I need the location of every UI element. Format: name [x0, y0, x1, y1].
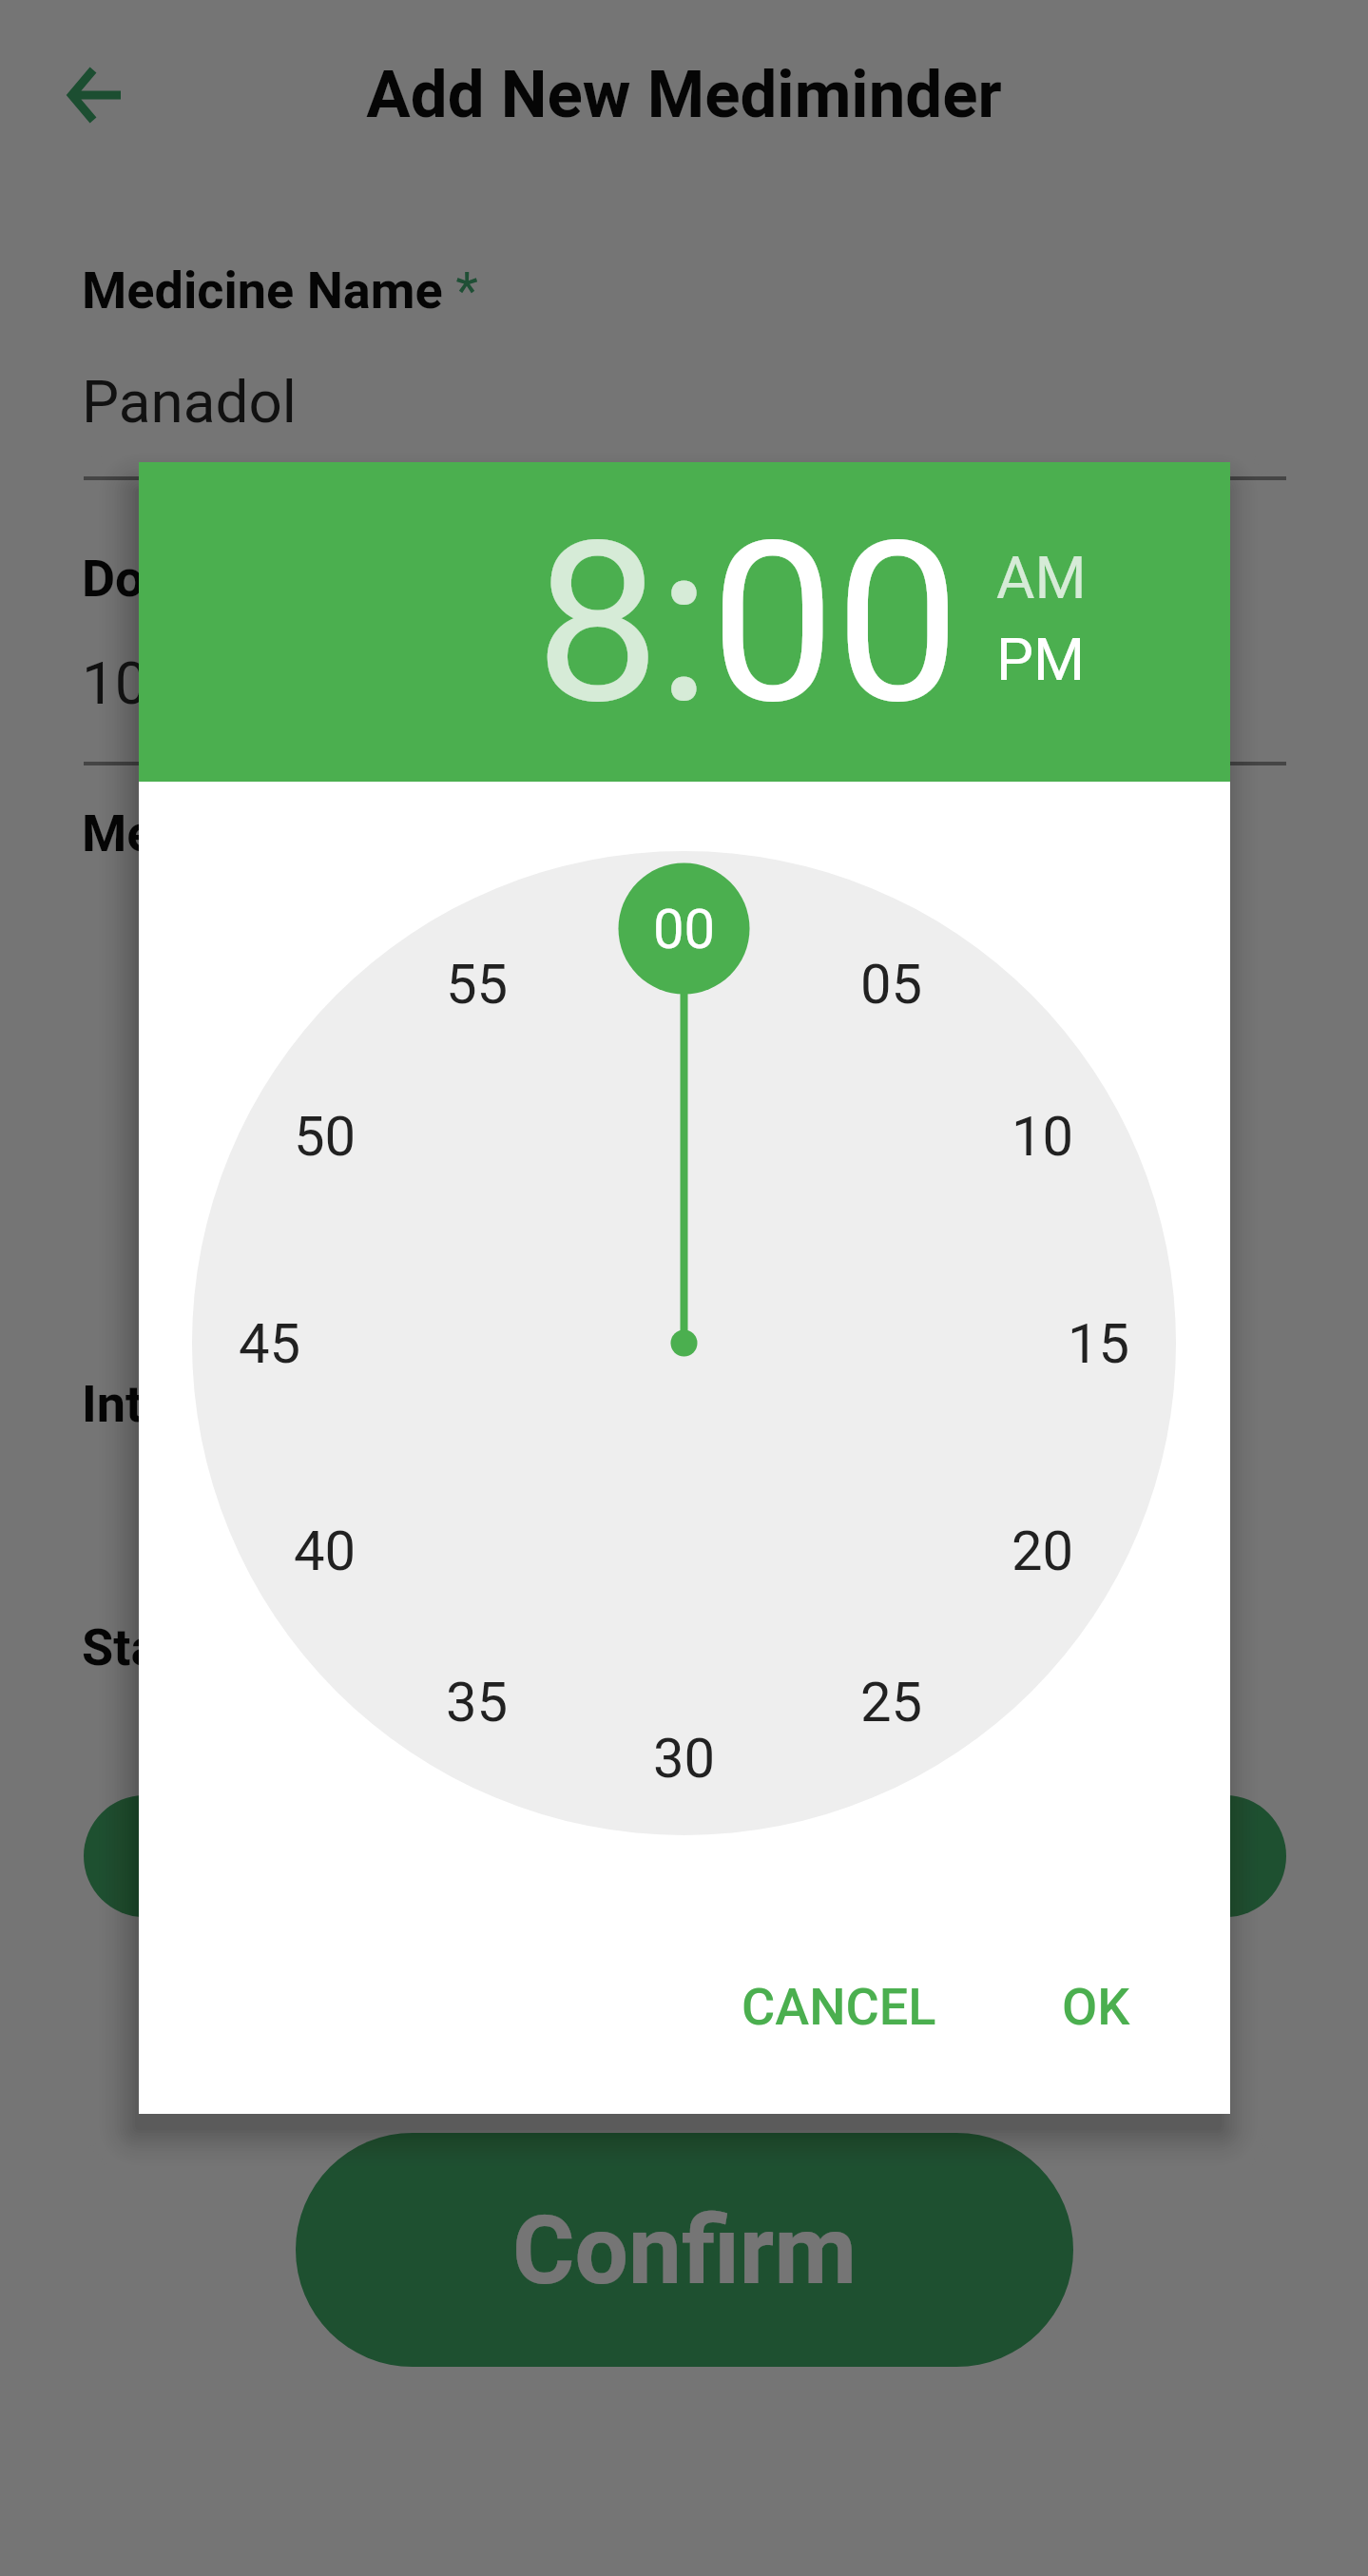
- staticText: OK: [1062, 1977, 1130, 2037]
- button[interactable]: AM: [996, 543, 1087, 612]
- staticText: 20: [1012, 1519, 1074, 1583]
- button[interactable]: 50: [260, 1071, 391, 1202]
- button[interactable]: 55: [412, 919, 543, 1050]
- staticText: 25: [860, 1670, 923, 1734]
- staticText: Confirm: [512, 2195, 857, 2306]
- staticText: *: [443, 261, 478, 320]
- staticText: 10: [1012, 1104, 1074, 1169]
- button[interactable]: CANCEL: [705, 1946, 972, 2067]
- button[interactable]: PM: [996, 625, 1086, 694]
- button[interactable]: 25: [826, 1637, 957, 1768]
- staticText: 00: [710, 494, 961, 754]
- button[interactable]: 45: [204, 1278, 336, 1409]
- staticText: 15: [1068, 1311, 1130, 1376]
- staticText: 55: [446, 952, 509, 1017]
- button[interactable]: 00: [619, 863, 750, 995]
- staticText: PM: [996, 625, 1086, 694]
- staticText: Dosage: [82, 549, 256, 609]
- button[interactable]: 40: [260, 1485, 391, 1617]
- button[interactable]: 8: [535, 494, 661, 754]
- staticText: 50: [294, 1104, 356, 1169]
- staticText: CANCEL: [742, 1977, 936, 2037]
- button[interactable]: Confirm: [296, 2133, 1073, 2367]
- staticText: Interval: [82, 1374, 257, 1434]
- button[interactable]: 05: [826, 919, 957, 1050]
- button[interactable]: 20: [977, 1485, 1108, 1617]
- button[interactable]: 00: [710, 494, 961, 754]
- staticText: 35: [446, 1670, 509, 1734]
- staticText: 00: [653, 897, 716, 961]
- button[interactable]: OK: [997, 1946, 1195, 2067]
- staticText: 05: [860, 952, 923, 1017]
- staticText: 8: [535, 494, 661, 754]
- staticText: Start Time: [82, 1617, 325, 1677]
- staticText: AM: [996, 543, 1087, 612]
- button[interactable]: 15: [1033, 1278, 1165, 1409]
- staticText: Panadol: [82, 367, 297, 436]
- staticText: Add New Mediminder: [0, 56, 1368, 133]
- staticText: Meal Time: [82, 804, 325, 863]
- button[interactable]: Back: [29, 29, 158, 159]
- button[interactable]: 30: [619, 1693, 750, 1824]
- staticText: :: [657, 494, 711, 754]
- staticText: 10 mg: [82, 649, 248, 718]
- button[interactable]: 10: [977, 1071, 1108, 1202]
- staticText: 45: [239, 1311, 301, 1376]
- staticText: 30: [653, 1726, 716, 1791]
- staticText: 40: [294, 1519, 356, 1583]
- staticText: Medicine Name: [82, 261, 443, 320]
- button[interactable]: Pick start time: [84, 1795, 1286, 1917]
- button[interactable]: 35: [412, 1637, 543, 1768]
